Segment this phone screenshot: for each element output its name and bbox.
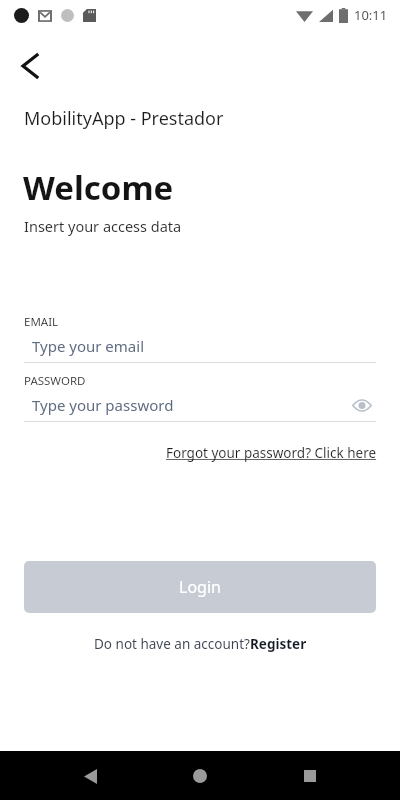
button[interactable]: Forgot your password? Click here bbox=[166, 442, 377, 464]
button[interactable]: Show password bbox=[348, 391, 376, 419]
staticText: PASSWORD bbox=[24, 373, 86, 389]
staticText: Register bbox=[250, 635, 307, 653]
staticText: Welcome bbox=[23, 165, 174, 210]
button[interactable]: Recents bbox=[290, 756, 330, 796]
button[interactable]: Back bbox=[8, 44, 52, 88]
staticText: Type your email bbox=[32, 336, 376, 356]
button[interactable]: Type your email bbox=[24, 330, 376, 362]
staticText: EMAIL bbox=[24, 314, 59, 330]
button[interactable]: Type your password bbox=[24, 389, 376, 421]
button[interactable]: Login bbox=[24, 561, 376, 613]
button[interactable]: Register bbox=[250, 635, 307, 653]
staticText: 10:11 bbox=[354, 6, 388, 24]
staticText: Insert your access data bbox=[24, 216, 182, 236]
button[interactable]: Back bbox=[70, 756, 110, 796]
staticText: MobilityApp - Prestador bbox=[24, 106, 224, 131]
staticText: Forgot your password? Click here bbox=[166, 444, 377, 462]
button[interactable]: Home bbox=[180, 756, 220, 796]
staticText: Type your password bbox=[32, 395, 348, 415]
staticText: Do not have an account? bbox=[94, 635, 250, 653]
staticText: Login bbox=[179, 576, 221, 598]
